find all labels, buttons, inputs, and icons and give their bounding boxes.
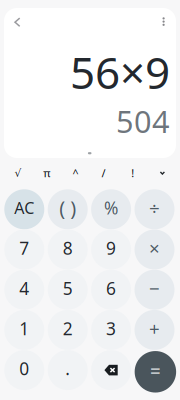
button[interactable]: ^ <box>61 160 89 186</box>
staticText: 4 <box>19 277 29 300</box>
staticText: 56×9 <box>70 43 170 101</box>
button[interactable]: 6 <box>91 270 131 310</box>
button[interactable]: More functions <box>148 160 176 186</box>
button[interactable]: 3 <box>91 310 131 350</box>
button[interactable]: π <box>33 160 61 186</box>
button[interactable]: − <box>134 270 174 310</box>
staticText: ! <box>131 166 134 180</box>
staticText: ( ) <box>59 194 76 221</box>
button[interactable]: Back <box>4 10 30 34</box>
button[interactable]: ! <box>119 160 147 186</box>
button[interactable]: AC <box>4 189 44 229</box>
staticText: 9 <box>106 236 116 259</box>
button[interactable]: ( ) <box>48 189 88 229</box>
button[interactable]: Equals <box>135 351 176 393</box>
button[interactable]: % <box>91 189 131 229</box>
button[interactable]: √ <box>4 160 32 186</box>
staticText: π <box>43 166 50 180</box>
staticText: 504 <box>116 101 170 141</box>
staticText: 8 <box>63 236 73 259</box>
staticText: = <box>150 358 161 383</box>
button[interactable]: 9 <box>91 229 131 269</box>
button[interactable]: 1 <box>4 310 44 350</box>
staticText: AC <box>14 197 34 218</box>
staticText: √ <box>14 167 21 179</box>
staticText: . <box>65 357 70 380</box>
button[interactable]: More options <box>152 10 176 34</box>
button[interactable]: 0 <box>4 350 44 390</box>
staticText: × <box>149 236 160 260</box>
button[interactable]: ÷ <box>134 189 174 229</box>
button[interactable]: Delete <box>91 350 131 390</box>
staticText: 0 <box>19 357 29 380</box>
button[interactable]: 7 <box>4 229 44 269</box>
staticText: 2 <box>63 317 73 340</box>
staticText: / <box>101 166 105 180</box>
staticText: % <box>104 196 118 219</box>
button[interactable]: 5 <box>48 270 88 310</box>
button[interactable]: 8 <box>48 229 88 269</box>
button[interactable]: . <box>48 350 88 390</box>
staticText: 7 <box>19 236 29 259</box>
staticText: 1 <box>19 317 29 340</box>
staticText: 3 <box>106 317 116 340</box>
staticText: ÷ <box>149 195 160 220</box>
staticText: 5 <box>63 277 73 300</box>
staticText: ^ <box>72 166 78 180</box>
button[interactable]: / <box>89 160 117 186</box>
staticText: − <box>149 276 160 301</box>
button[interactable]: + <box>134 310 174 350</box>
staticText: + <box>149 316 160 341</box>
staticText: 6 <box>106 277 116 300</box>
button[interactable]: 2 <box>48 310 88 350</box>
button[interactable]: × <box>134 229 174 269</box>
button[interactable]: 4 <box>4 270 44 310</box>
